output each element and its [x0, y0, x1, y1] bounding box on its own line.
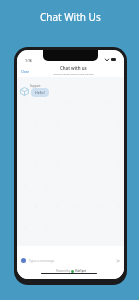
staticText: Powered by [56, 269, 71, 273]
staticText: 1:16 [25, 58, 32, 63]
other: Send [116, 259, 120, 263]
staticText: Type a message [29, 258, 55, 263]
staticText: Close [21, 70, 30, 74]
staticText: Chat with us [60, 65, 87, 71]
button[interactable]: Close [19, 69, 32, 75]
staticText: Typically replies within a few minutes [53, 72, 94, 75]
staticText: Hello! [35, 90, 45, 95]
staticText: Chat With Us [40, 10, 101, 24]
staticText: HubSpot [75, 269, 86, 273]
other: Emoji [21, 258, 26, 263]
staticText: Support [30, 84, 41, 88]
